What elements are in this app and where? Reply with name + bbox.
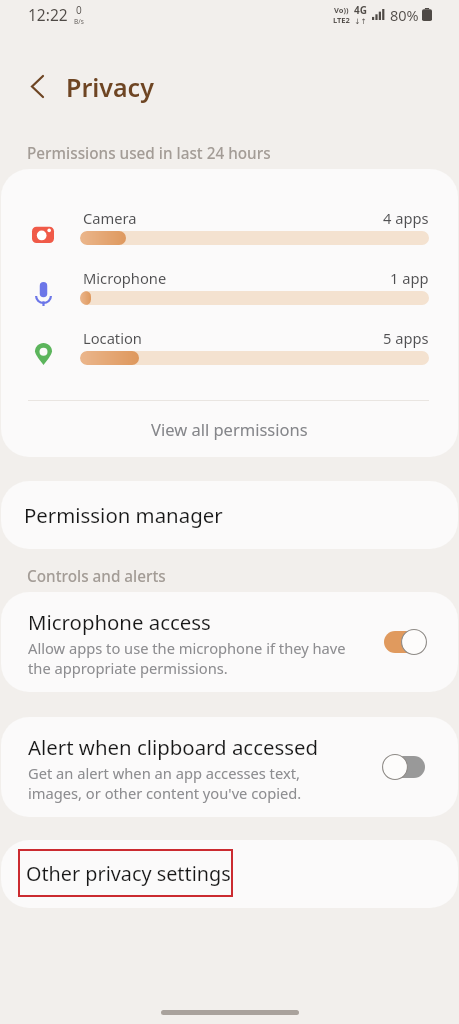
staticText: Microphone access [28,608,211,636]
staticText: Alert when clipboard accessed [28,733,319,761]
staticText: B/s [74,17,84,26]
staticText: 1 app [390,268,429,288]
staticText: Camera [83,208,137,228]
staticText: Permissions used in last 24 hours [27,143,271,164]
staticText: Controls and alerts [27,566,166,587]
staticText: Microphone [83,268,167,288]
staticText: Get an alert when an app accesses text, … [28,763,302,804]
staticText: Location [83,328,142,348]
button[interactable]: Alert when clipboard accessed [1,717,458,817]
staticText: Privacy [66,70,154,104]
button[interactable]: Turn on [376,717,432,817]
staticText: Vo)) [334,5,349,15]
button[interactable]: View all permissions [1,401,458,457]
staticText: 5 apps [383,328,429,348]
staticText: Other privacy settings [26,860,231,887]
staticText: ↓↑ [354,17,367,26]
button[interactable]: Permission manager [1,481,458,549]
staticText: View all permissions [151,418,308,440]
button[interactable]: Microphone access [1,592,458,692]
staticText: Permission manager [24,501,223,529]
button[interactable]: Other privacy settings [1,840,458,908]
staticText: 4G [354,3,367,17]
staticText: LTE2 [333,15,350,25]
staticText: 4 apps [383,208,429,228]
staticText: 80% [390,5,419,25]
staticText: 0 [76,3,82,17]
staticText: 12:22 [28,4,68,25]
button[interactable]: Turn off [376,592,432,692]
staticText: Allow apps to use the microphone if they… [28,638,346,679]
button[interactable]: Back [18,67,57,106]
